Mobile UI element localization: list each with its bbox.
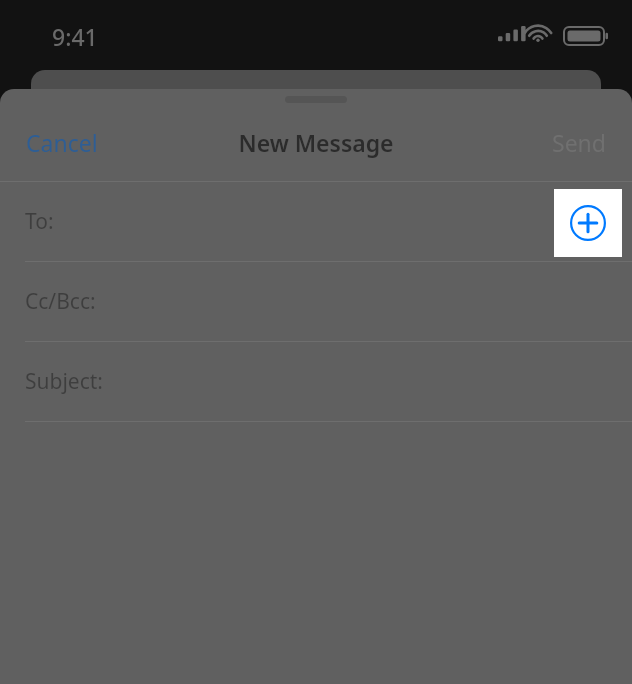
button[interactable]: Send: [526, 115, 632, 170]
staticText: Cc/Bcc:: [25, 287, 96, 316]
button[interactable]: Cancel: [0, 115, 124, 170]
staticText: Subject:: [25, 367, 103, 396]
button[interactable]: Add recipient: [554, 189, 622, 257]
staticText: 9:41: [52, 21, 98, 52]
staticText: Send: [552, 127, 606, 158]
staticText: Cancel: [26, 127, 98, 158]
staticText: New Message: [238, 127, 394, 158]
staticText: To:: [25, 207, 54, 236]
button[interactable]: To:: [0, 182, 632, 261]
